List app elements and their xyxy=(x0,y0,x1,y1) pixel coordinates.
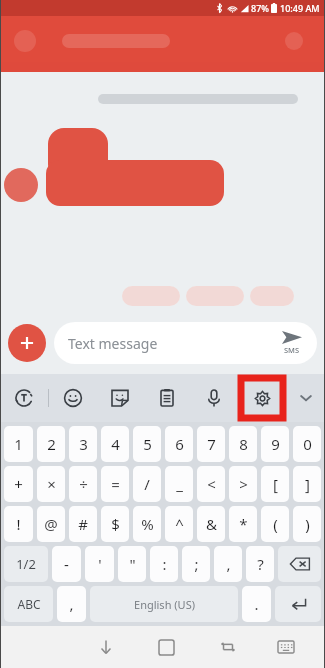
staticText: ; xyxy=(194,554,199,574)
button[interactable]: Voice input xyxy=(190,374,237,422)
button[interactable]: " xyxy=(118,546,146,582)
button[interactable]: % xyxy=(133,506,161,542)
staticText: 6 xyxy=(175,434,184,454)
staticText: Text message xyxy=(68,334,275,353)
button[interactable]: : xyxy=(150,546,178,582)
button[interactable]: . xyxy=(242,586,271,622)
staticText: # xyxy=(78,514,88,534)
button[interactable]: ) xyxy=(293,506,321,542)
button[interactable]: = xyxy=(101,466,129,502)
button[interactable]: ; xyxy=(182,546,210,582)
button[interactable]: Translate xyxy=(0,374,48,422)
button[interactable]: _ xyxy=(165,466,193,502)
staticText: % xyxy=(141,514,154,534)
button[interactable]: 3 xyxy=(69,426,97,462)
staticText: 2 xyxy=(47,434,56,454)
button[interactable]: Backspace xyxy=(278,546,321,582)
button[interactable]: < xyxy=(197,466,225,502)
staticText: : xyxy=(162,554,167,574)
button[interactable]: Switch keyboard xyxy=(258,626,313,668)
button[interactable]: ! xyxy=(4,506,33,542)
button[interactable]: Recent apps xyxy=(197,626,258,668)
staticText: & xyxy=(206,514,217,534)
button[interactable]: Keyboard settings xyxy=(241,378,283,418)
button[interactable]: * xyxy=(229,506,257,542)
button[interactable]: + xyxy=(4,466,33,502)
button[interactable]: & xyxy=(197,506,225,542)
button[interactable]: Expand toolbar xyxy=(287,374,325,422)
staticText: 1/2 xyxy=(16,555,36,573)
staticText: English (US) xyxy=(134,597,195,612)
button[interactable]: ? xyxy=(246,546,274,582)
button[interactable]: 8 xyxy=(229,426,257,462)
button[interactable]: $ xyxy=(101,506,129,542)
staticText: 7 xyxy=(207,434,216,454)
button[interactable]: 2 xyxy=(37,426,65,462)
staticText: ] xyxy=(305,474,310,494)
button[interactable]: English (US) xyxy=(90,586,238,622)
button[interactable]: Home xyxy=(136,626,197,668)
staticText: = xyxy=(111,474,120,494)
button[interactable]: ÷ xyxy=(69,466,97,502)
staticText: 3 xyxy=(79,434,88,454)
staticText: ABC xyxy=(17,596,41,612)
staticText: 10:49 AM xyxy=(280,2,320,14)
button[interactable]: ' xyxy=(85,546,114,582)
staticText: ? xyxy=(257,554,264,574)
button[interactable]: 5 xyxy=(133,426,161,462)
button[interactable]: Text message xyxy=(54,322,317,364)
button[interactable]: ^ xyxy=(165,506,193,542)
button[interactable]: 9 xyxy=(261,426,289,462)
staticText: ^ xyxy=(175,514,184,534)
button[interactable]: 0 xyxy=(293,426,321,462)
button[interactable]: ABC xyxy=(4,586,53,622)
button[interactable]: 4 xyxy=(101,426,129,462)
button[interactable]: ( xyxy=(261,506,289,542)
staticText: ÷ xyxy=(79,474,88,494)
button[interactable]: @ xyxy=(37,506,65,542)
button[interactable]: Hide keyboard xyxy=(75,626,136,668)
button[interactable]: Stickers xyxy=(96,374,143,422)
button[interactable]: [ xyxy=(261,466,289,502)
button[interactable]: , xyxy=(214,546,242,582)
staticText: - xyxy=(64,554,69,574)
staticText: 87% xyxy=(251,2,269,14)
button[interactable]: 6 xyxy=(165,426,193,462)
staticText: , xyxy=(226,554,231,574)
staticText: < xyxy=(207,474,216,494)
button[interactable]: × xyxy=(37,466,65,502)
button[interactable]: , xyxy=(57,586,86,622)
staticText: > xyxy=(239,474,248,494)
button[interactable]: ] xyxy=(293,466,321,502)
button[interactable]: Emoji xyxy=(49,374,96,422)
staticText: * xyxy=(239,514,248,534)
button[interactable]: / xyxy=(133,466,161,502)
staticText: 4 xyxy=(111,434,120,454)
staticText: _ xyxy=(176,474,183,494)
staticText: 1 xyxy=(14,434,23,454)
staticText: SMS xyxy=(284,345,300,355)
staticText: ) xyxy=(305,514,310,534)
staticText: ' xyxy=(98,554,102,574)
button[interactable]: Send SMS xyxy=(275,331,309,355)
staticText: 8 xyxy=(239,434,248,454)
staticText: $ xyxy=(111,514,120,534)
button[interactable]: Enter xyxy=(275,586,321,622)
staticText: ! xyxy=(16,514,21,534)
staticText: @ xyxy=(44,514,58,534)
button[interactable]: > xyxy=(229,466,257,502)
staticText: + xyxy=(14,474,23,494)
button[interactable]: # xyxy=(69,506,97,542)
button[interactable]: Add attachment xyxy=(8,324,46,362)
button[interactable]: Clipboard xyxy=(143,374,190,422)
staticText: 0 xyxy=(303,434,312,454)
staticText: [ xyxy=(273,474,278,494)
staticText: , xyxy=(69,594,74,614)
button[interactable]: 7 xyxy=(197,426,225,462)
button[interactable]: 1/2 xyxy=(4,546,48,582)
button[interactable]: - xyxy=(52,546,81,582)
button[interactable]: 1 xyxy=(4,426,33,462)
staticText: 9 xyxy=(271,434,280,454)
staticText: × xyxy=(47,474,56,494)
staticText: 5 xyxy=(143,434,152,454)
